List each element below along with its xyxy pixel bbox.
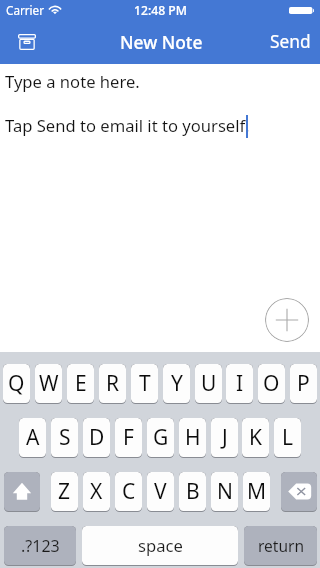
- button[interactable]: E: [67, 364, 94, 404]
- button[interactable]: I: [226, 364, 253, 404]
- staticText: Type a note here.: [5, 70, 140, 93]
- staticText: G: [153, 423, 169, 452]
- staticText: N: [217, 477, 233, 506]
- staticText: space: [138, 534, 183, 557]
- button[interactable]: A: [19, 418, 46, 458]
- staticText: J: [222, 423, 228, 452]
- staticText: Carrier: [6, 2, 45, 18]
- button[interactable]: U: [195, 364, 222, 404]
- staticText: M: [247, 477, 267, 506]
- button[interactable]: Shift: [4, 472, 40, 512]
- button[interactable]: Archive: [7, 22, 47, 62]
- staticText: T: [139, 369, 151, 398]
- button[interactable]: C: [115, 472, 142, 512]
- button[interactable]: X: [83, 472, 110, 512]
- button[interactable]: Delete: [281, 472, 317, 512]
- button[interactable]: return: [244, 526, 317, 566]
- button[interactable]: S: [51, 418, 78, 458]
- button[interactable]: Add: [265, 298, 309, 342]
- button[interactable]: Y: [163, 364, 190, 404]
- button[interactable]: L: [274, 418, 301, 458]
- button[interactable]: R: [99, 364, 126, 404]
- staticText: F: [123, 423, 134, 452]
- staticText: H: [185, 423, 201, 452]
- staticText: C: [122, 477, 136, 506]
- button[interactable]: Z: [51, 472, 78, 512]
- button[interactable]: M: [243, 472, 270, 512]
- button[interactable]: Send: [256, 20, 320, 64]
- button[interactable]: H: [179, 418, 206, 458]
- staticText: 12:48 PM: [134, 2, 187, 19]
- staticText: return: [258, 535, 304, 556]
- button[interactable]: Q: [3, 364, 30, 404]
- button[interactable]: W: [35, 364, 62, 404]
- button[interactable]: F: [115, 418, 142, 458]
- button[interactable]: Note text: [0, 64, 320, 352]
- button[interactable]: G: [147, 418, 174, 458]
- staticText: U: [201, 369, 217, 398]
- staticText: K: [249, 423, 262, 452]
- button[interactable]: D: [83, 418, 110, 458]
- button[interactable]: .?123: [4, 526, 76, 566]
- button[interactable]: T: [131, 364, 158, 404]
- staticText: X: [90, 477, 103, 506]
- button[interactable]: B: [179, 472, 206, 512]
- staticText: I: [236, 369, 244, 398]
- staticText: L: [282, 423, 294, 452]
- staticText: W: [39, 369, 59, 398]
- button[interactable]: space: [82, 526, 238, 566]
- button[interactable]: J: [211, 418, 238, 458]
- staticText: Q: [8, 369, 25, 398]
- staticText: Z: [58, 477, 71, 506]
- staticText: B: [186, 477, 200, 506]
- staticText: E: [75, 369, 87, 398]
- staticText: V: [154, 477, 167, 506]
- staticText: Tap Send to email it to yourself.: [5, 114, 250, 137]
- staticText: Y: [171, 369, 183, 398]
- staticText: .?123: [21, 535, 60, 557]
- staticText: P: [297, 369, 310, 398]
- button[interactable]: K: [242, 418, 269, 458]
- button[interactable]: V: [147, 472, 174, 512]
- button[interactable]: P: [290, 364, 317, 404]
- staticText: Send: [270, 30, 311, 54]
- staticText: S: [59, 423, 71, 452]
- staticText: R: [106, 369, 120, 398]
- staticText: A: [26, 423, 40, 452]
- staticText: O: [263, 369, 280, 398]
- button[interactable]: N: [211, 472, 238, 512]
- button[interactable]: O: [258, 364, 285, 404]
- staticText: New Note: [120, 30, 203, 54]
- staticText: D: [89, 423, 105, 452]
